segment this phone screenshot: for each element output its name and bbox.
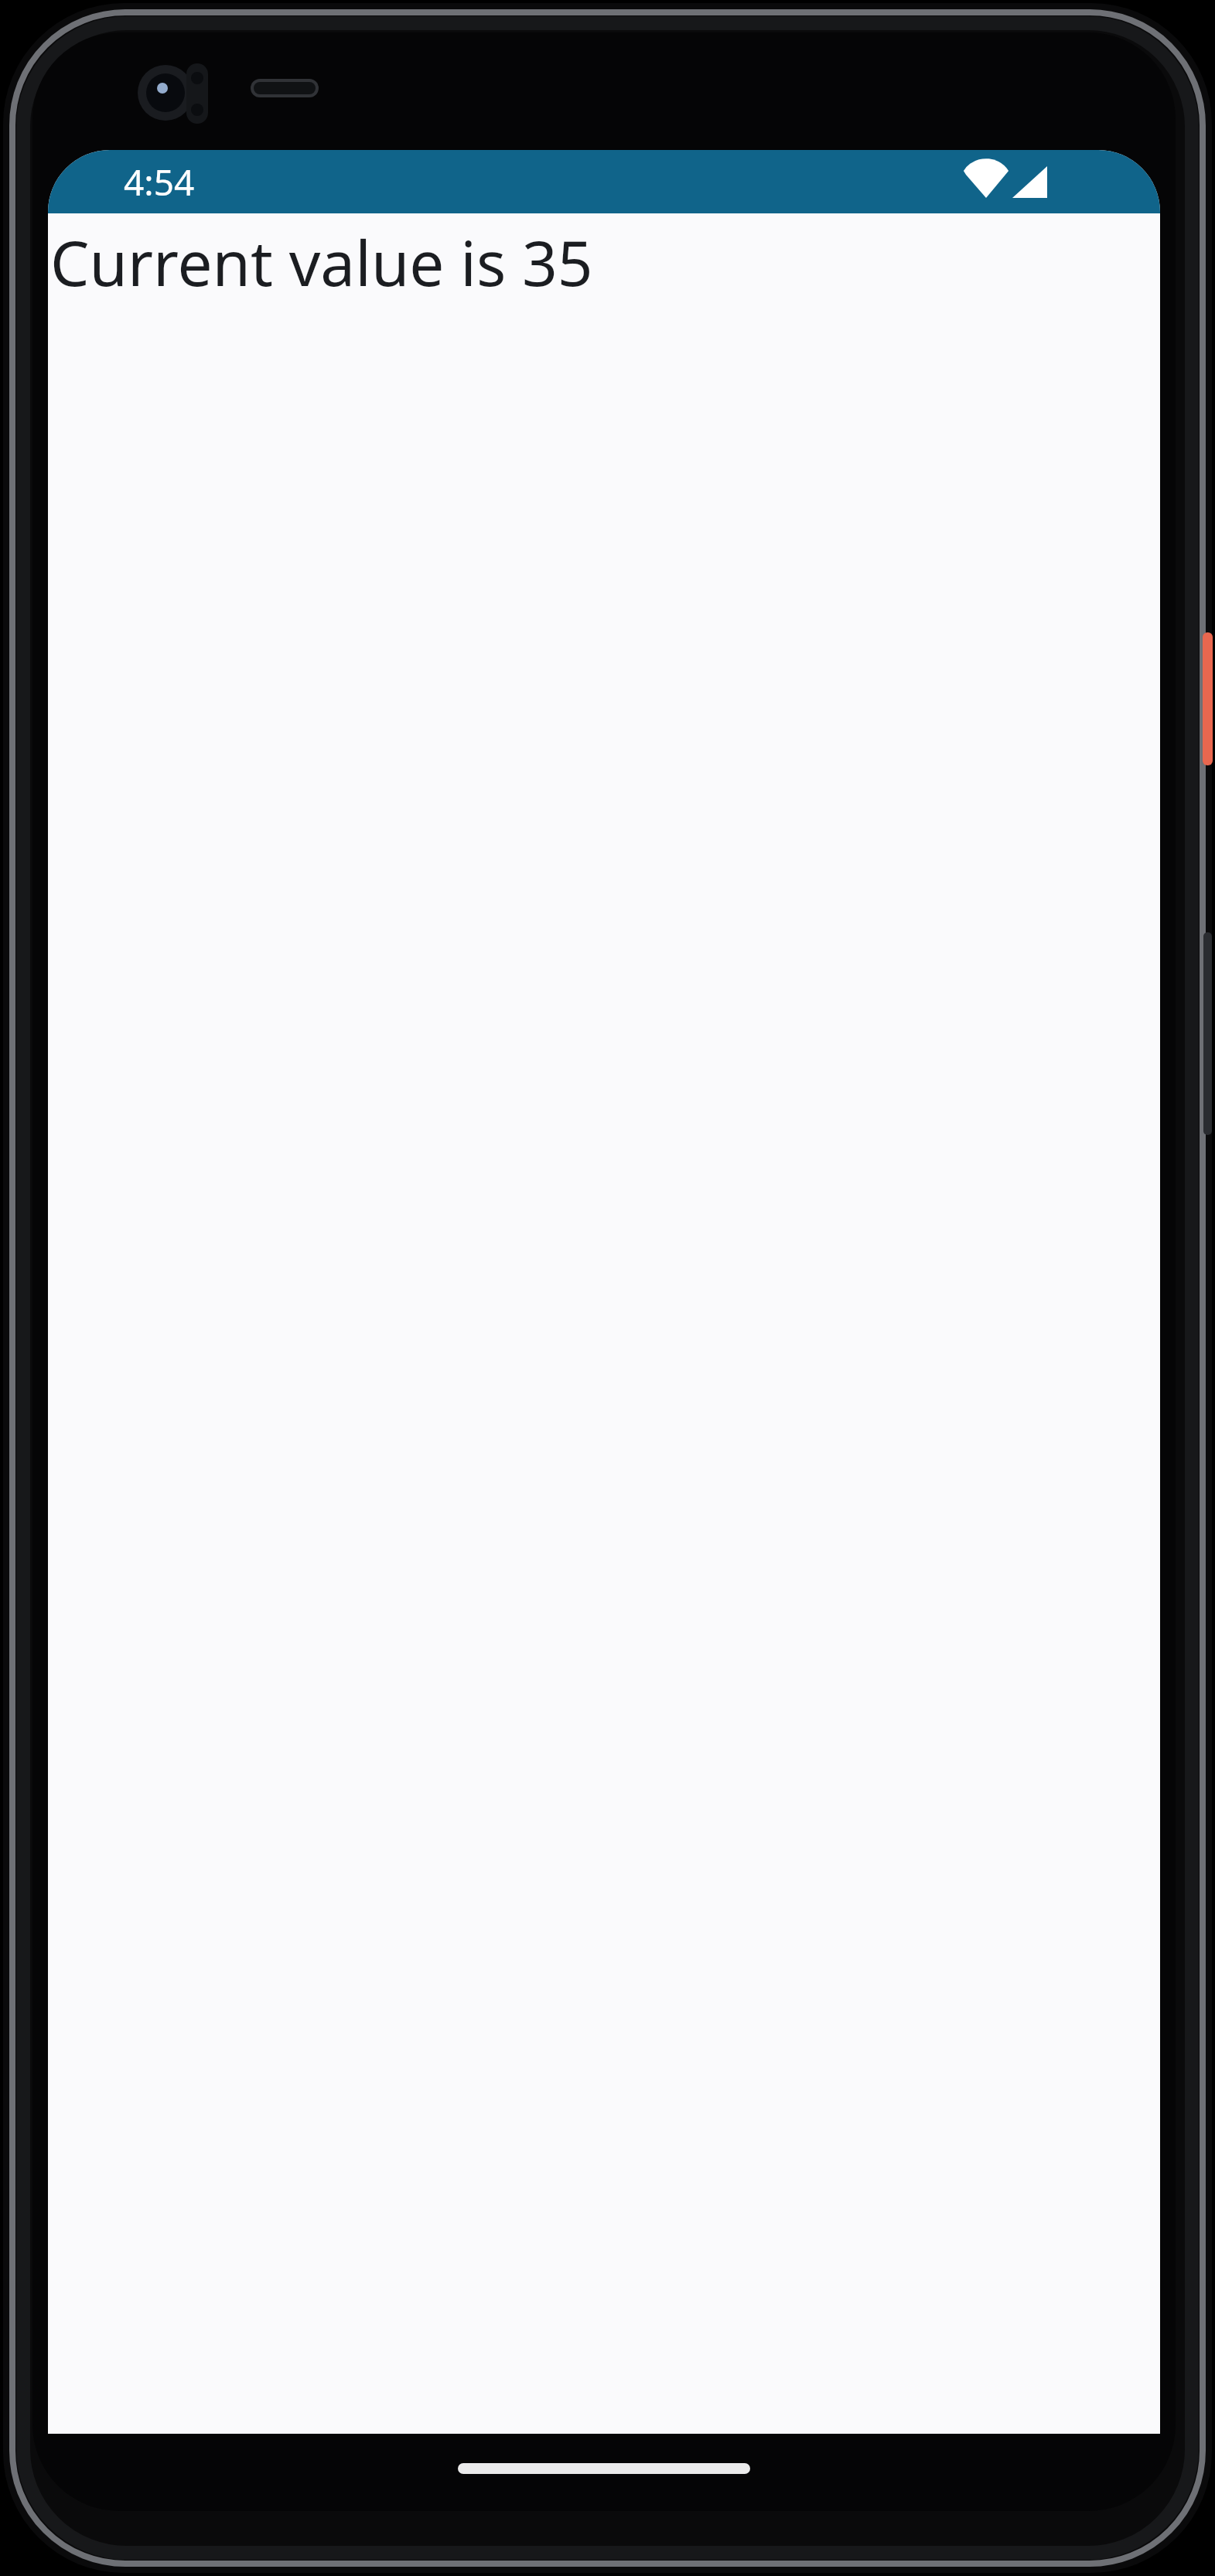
staticText: 4:54 — [124, 158, 195, 206]
staticText: Current value is 35 — [50, 220, 593, 304]
other: Wi-Fi signal full — [966, 166, 1006, 198]
other: Mobile signal full — [1012, 166, 1047, 198]
